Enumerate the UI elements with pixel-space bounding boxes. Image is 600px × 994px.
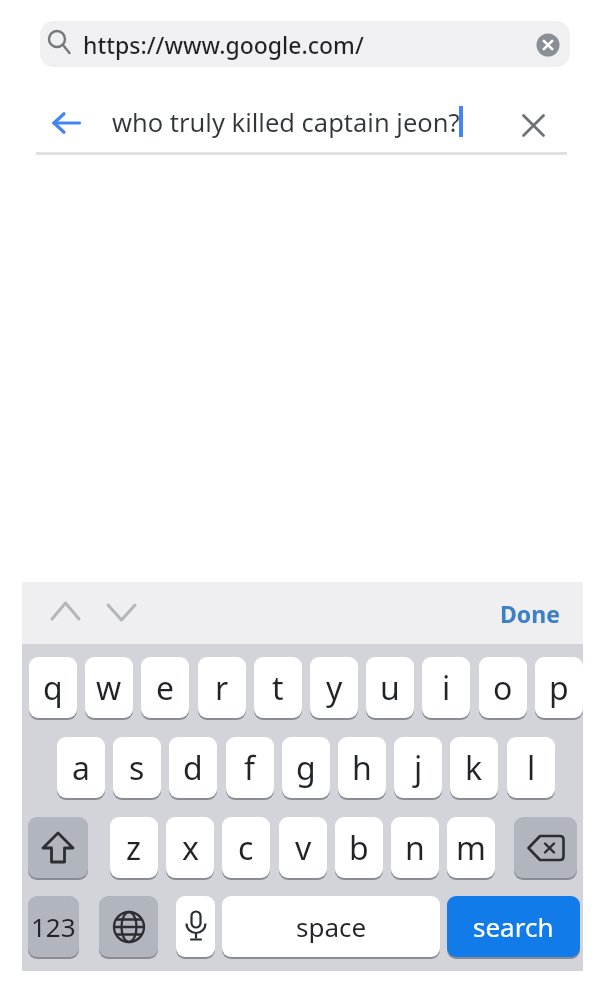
button[interactable]: u xyxy=(366,657,414,718)
button[interactable]: j xyxy=(394,737,442,798)
button[interactable]: m xyxy=(447,817,495,878)
button[interactable]: c xyxy=(222,817,270,878)
staticText: search xyxy=(473,909,554,944)
staticText: https://www.google.com/ xyxy=(83,29,364,60)
staticText: z xyxy=(126,826,142,870)
staticText: r xyxy=(215,666,229,710)
button[interactable]: t xyxy=(254,657,302,718)
staticText: a xyxy=(72,746,90,790)
staticText: q xyxy=(43,666,63,710)
staticText: s xyxy=(129,746,145,790)
button[interactable]: o xyxy=(479,657,527,718)
staticText: f xyxy=(244,746,256,790)
staticText: p xyxy=(549,666,569,710)
button[interactable]: w xyxy=(85,657,133,718)
staticText: k xyxy=(465,746,483,790)
button[interactable]: n xyxy=(391,817,439,878)
staticText: who truly killed captain jeon? xyxy=(112,105,460,140)
staticText: u xyxy=(380,666,400,710)
staticText: v xyxy=(295,826,312,870)
button[interactable]: 123 xyxy=(28,896,79,957)
button[interactable] xyxy=(50,600,82,622)
button[interactable]: e xyxy=(141,657,189,718)
staticText: x xyxy=(182,826,199,870)
staticText: j xyxy=(414,746,423,790)
staticText: g xyxy=(296,746,316,790)
button[interactable]: g xyxy=(282,737,330,798)
staticText: d xyxy=(183,746,203,790)
button[interactable] xyxy=(514,817,577,878)
staticText: n xyxy=(405,826,425,870)
button[interactable]: f xyxy=(226,737,274,798)
button[interactable]: d xyxy=(169,737,217,798)
button[interactable]: r xyxy=(198,657,246,718)
staticText: c xyxy=(238,826,254,870)
button[interactable]: search xyxy=(447,896,580,957)
button[interactable] xyxy=(99,896,158,957)
button[interactable]: b xyxy=(335,817,383,878)
button[interactable]: y xyxy=(310,657,358,718)
staticText: m xyxy=(456,826,486,870)
staticText: Done xyxy=(500,598,560,629)
button[interactable]: s xyxy=(113,737,161,798)
button[interactable]: a xyxy=(57,737,105,798)
button[interactable] xyxy=(176,896,215,957)
staticText: h xyxy=(352,746,372,790)
staticText: i xyxy=(442,666,451,710)
button[interactable]: q xyxy=(29,657,77,718)
button[interactable] xyxy=(536,33,560,57)
staticText: w xyxy=(96,666,122,710)
button[interactable]: i xyxy=(422,657,470,718)
button[interactable]: h xyxy=(338,737,386,798)
staticText: l xyxy=(527,746,536,790)
staticText: space xyxy=(296,909,367,944)
button[interactable]: z xyxy=(110,817,158,878)
staticText: e xyxy=(156,666,175,710)
button[interactable] xyxy=(40,21,570,67)
staticText: o xyxy=(493,666,513,710)
button[interactable]: p xyxy=(535,657,583,718)
button[interactable]: k xyxy=(450,737,498,798)
staticText: y xyxy=(326,666,343,710)
staticText: 123 xyxy=(31,909,76,944)
button[interactable]: Done xyxy=(488,582,572,644)
button[interactable]: l xyxy=(507,737,555,798)
staticText: b xyxy=(349,826,369,870)
button[interactable] xyxy=(52,112,82,134)
button[interactable] xyxy=(28,817,88,878)
button[interactable]: v xyxy=(279,817,327,878)
button[interactable]: space xyxy=(222,896,440,957)
button[interactable] xyxy=(522,113,545,138)
button[interactable]: x xyxy=(166,817,214,878)
staticText: t xyxy=(272,666,284,710)
button[interactable] xyxy=(106,602,138,624)
